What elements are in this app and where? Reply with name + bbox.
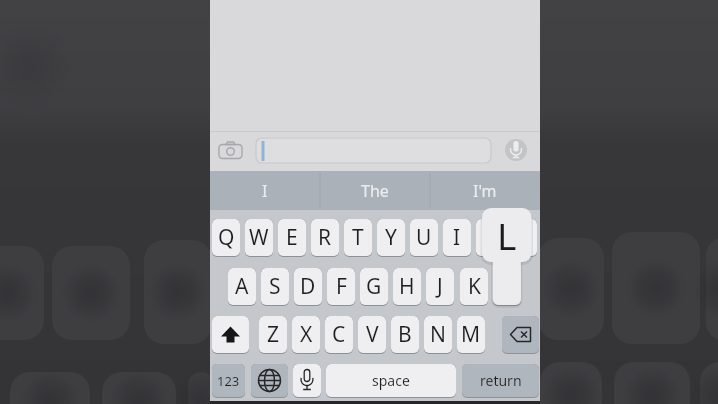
button[interactable]: D xyxy=(294,268,322,306)
button[interactable]: P xyxy=(509,219,537,257)
button[interactable]: T xyxy=(344,219,372,257)
staticText: I'm xyxy=(473,180,497,202)
button[interactable]: return xyxy=(462,364,539,398)
button[interactable]: A xyxy=(228,268,256,306)
button[interactable] xyxy=(212,316,249,354)
button[interactable] xyxy=(502,316,539,354)
button[interactable]: F xyxy=(327,268,355,306)
staticText: N xyxy=(430,320,446,349)
staticText: K xyxy=(468,272,481,301)
staticText: H xyxy=(399,272,415,301)
staticText: L xyxy=(497,210,517,260)
button[interactable]: M xyxy=(457,316,485,354)
button[interactable]: G xyxy=(360,268,388,306)
button[interactable]: 123 xyxy=(212,364,245,398)
button[interactable] xyxy=(293,364,321,398)
button[interactable]: E xyxy=(278,219,306,257)
button[interactable]: H xyxy=(393,268,421,306)
staticText: S xyxy=(269,272,281,301)
button[interactable]: O xyxy=(476,219,504,257)
button[interactable]: C xyxy=(325,316,353,354)
staticText: F xyxy=(336,272,347,301)
staticText: I xyxy=(262,180,268,202)
staticText: I xyxy=(453,223,461,252)
staticText: The xyxy=(361,180,389,202)
staticText: 123 xyxy=(217,372,240,390)
staticText: E xyxy=(286,223,298,252)
staticText: U xyxy=(416,223,432,252)
button[interactable]: V xyxy=(358,316,386,354)
button[interactable]: L xyxy=(482,210,532,260)
button[interactable]: K xyxy=(460,268,488,306)
button[interactable]: I'm xyxy=(430,171,540,210)
button[interactable]: Z xyxy=(259,316,287,354)
staticText: G xyxy=(366,272,382,301)
button[interactable]: B xyxy=(391,316,419,354)
button[interactable]: I xyxy=(210,171,320,210)
staticText: Z xyxy=(267,320,280,349)
staticText: A xyxy=(235,272,249,301)
staticText: Q xyxy=(218,223,235,252)
staticText: W xyxy=(249,223,269,252)
staticText: space xyxy=(372,371,410,390)
button[interactable]: I xyxy=(443,219,471,257)
button[interactable]: W xyxy=(245,219,273,257)
button[interactable]: L xyxy=(493,268,521,306)
staticText: M xyxy=(461,320,481,349)
button[interactable]: The xyxy=(320,171,430,210)
staticText: R xyxy=(318,223,332,252)
staticText: return xyxy=(480,371,522,390)
staticText: D xyxy=(300,272,316,301)
button[interactable]: N xyxy=(424,316,452,354)
button[interactable]: X xyxy=(292,316,320,354)
button[interactable]: J xyxy=(426,268,454,306)
button[interactable]: space xyxy=(326,364,456,398)
button[interactable] xyxy=(251,364,288,398)
button[interactable]: Q xyxy=(212,219,240,257)
staticText: V xyxy=(366,320,379,349)
button[interactable] xyxy=(505,139,527,161)
button[interactable]: Y xyxy=(377,219,405,257)
staticText: C xyxy=(332,320,346,349)
staticText: Y xyxy=(385,223,397,252)
staticText: X xyxy=(300,320,313,349)
button[interactable]: S xyxy=(261,268,289,306)
button[interactable] xyxy=(256,138,491,163)
staticText: B xyxy=(398,320,412,349)
button[interactable]: U xyxy=(410,219,438,257)
staticText: J xyxy=(437,272,443,301)
staticText: T xyxy=(352,223,364,252)
button[interactable]: R xyxy=(311,219,339,257)
